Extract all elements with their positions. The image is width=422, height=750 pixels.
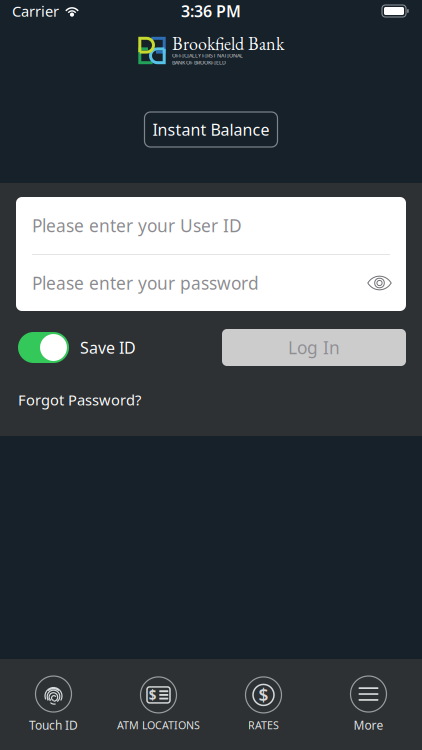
staticText: More: [353, 717, 383, 733]
staticText: $: [258, 683, 268, 706]
staticText: Forgot Password?: [18, 390, 141, 409]
button[interactable]: Log In: [222, 329, 406, 366]
staticText: Save ID: [80, 337, 136, 358]
staticText: Log In: [288, 336, 340, 359]
button[interactable]: More: [316, 670, 421, 738]
staticText: 3:36 PM: [181, 0, 241, 22]
staticText: BANK OF BROOKFIELD: [172, 59, 226, 66]
staticText: RATES: [248, 718, 279, 732]
staticText: Carrier: [12, 1, 59, 21]
button[interactable]: $: [106, 670, 211, 738]
staticText: Touch ID: [29, 717, 78, 733]
button[interactable]: Save ID: [18, 332, 136, 363]
staticText: Instant Balance: [152, 119, 269, 140]
staticText: OFFICIALLY FIRST NATIONAL: [172, 52, 243, 59]
button[interactable]: $: [211, 670, 316, 738]
staticText: Brookfield Bank: [172, 32, 284, 55]
staticText: ATM LOCATIONS: [117, 718, 200, 732]
button[interactable]: Forgot Password?: [0, 390, 422, 409]
staticText: $: [149, 686, 157, 704]
staticText: Please enter your password: [32, 271, 259, 294]
button[interactable]: Instant Balance: [144, 112, 277, 147]
button[interactable]: Show password: [367, 275, 392, 290]
staticText: Please enter your User ID: [32, 214, 242, 237]
button[interactable]: Touch ID: [1, 670, 106, 738]
